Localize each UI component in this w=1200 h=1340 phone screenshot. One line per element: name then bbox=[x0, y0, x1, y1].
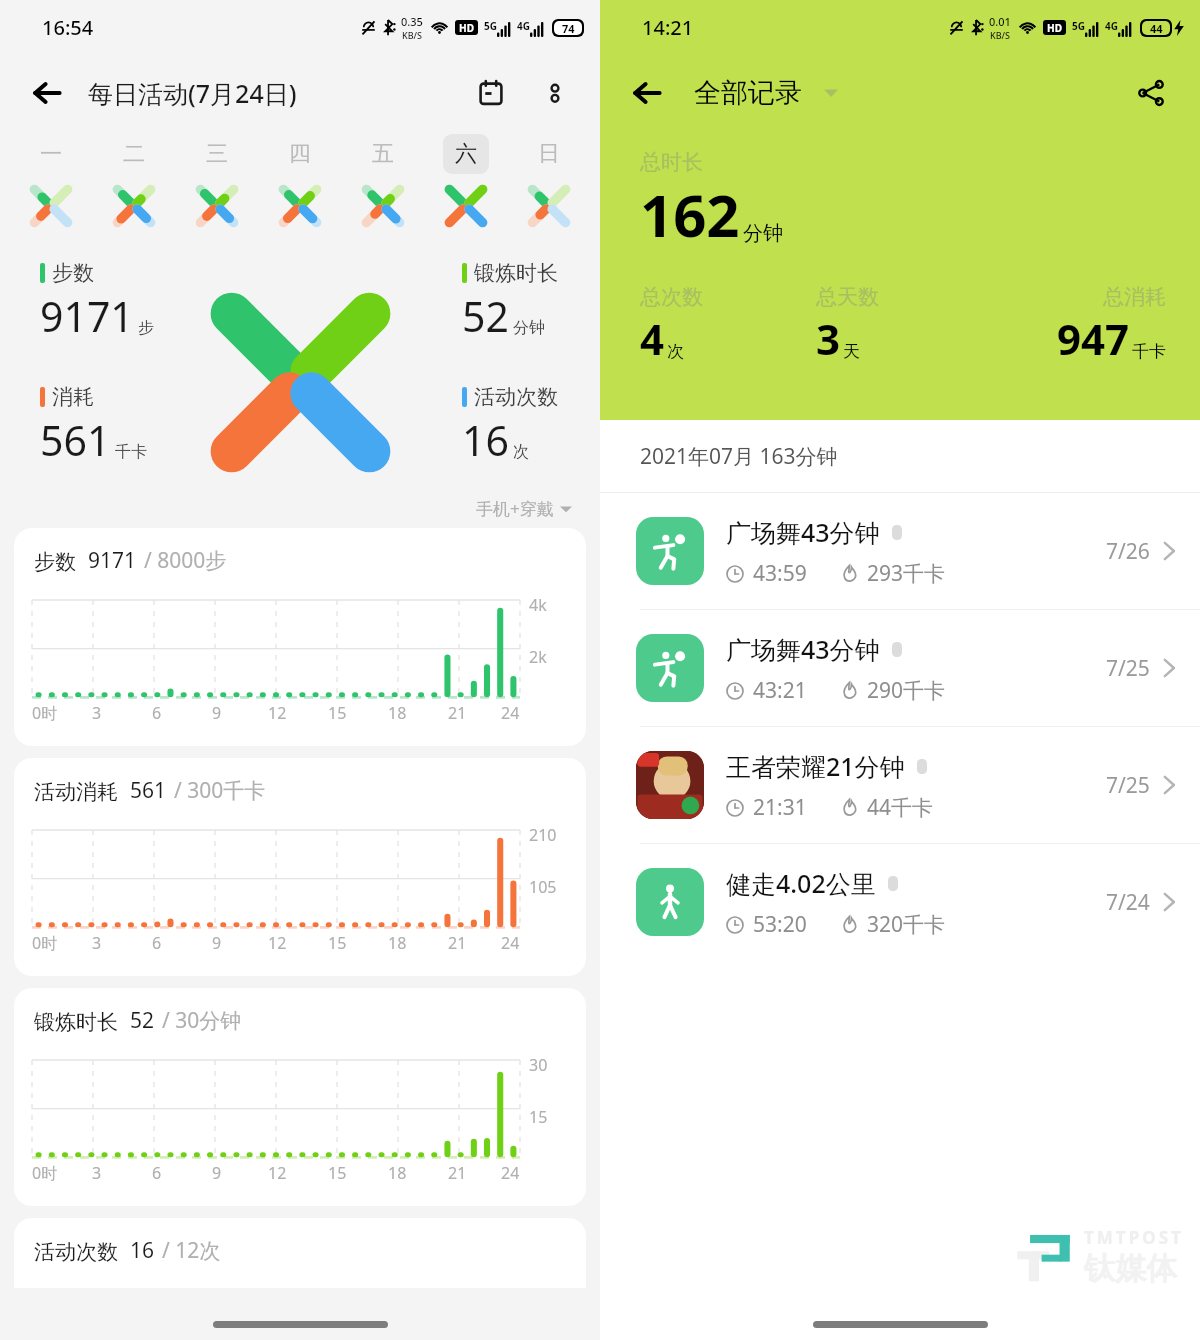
button[interactable]: 锻炼时长 bbox=[462, 260, 558, 344]
button[interactable]: 四 bbox=[258, 130, 341, 178]
staticText: 9171 bbox=[40, 288, 134, 344]
staticText: 4 bbox=[640, 310, 665, 367]
staticText: 43:21 bbox=[753, 676, 807, 705]
staticText: 74 bbox=[562, 21, 575, 35]
button[interactable]: 全部记录 bbox=[694, 76, 838, 110]
staticText: 7/25 bbox=[1106, 654, 1150, 683]
button[interactable]: Share bbox=[1128, 70, 1174, 116]
staticText: 18 bbox=[388, 702, 407, 724]
staticText: 三 bbox=[206, 140, 228, 168]
staticText: / 12次 bbox=[162, 1236, 221, 1265]
staticText: KB/S bbox=[402, 29, 422, 41]
staticText: 293千卡 bbox=[867, 559, 946, 588]
button[interactable]: 锻炼时长 bbox=[14, 988, 586, 1206]
button[interactable]: 活动次数 bbox=[462, 384, 558, 468]
staticText: 3 bbox=[92, 702, 102, 724]
staticText: 2021年07月 163分钟 bbox=[640, 442, 838, 471]
staticText: 9 bbox=[212, 702, 222, 724]
staticText: 锻炼时长 bbox=[474, 260, 558, 286]
button[interactable]: 日 bbox=[507, 130, 590, 178]
staticText: 16 bbox=[130, 1236, 155, 1265]
staticText: 3 bbox=[92, 932, 102, 954]
staticText: 五 bbox=[372, 140, 394, 168]
button[interactable] bbox=[175, 178, 258, 234]
staticText: 24 bbox=[501, 1162, 520, 1184]
staticText: 44 bbox=[1150, 21, 1163, 35]
staticText: 15 bbox=[529, 1106, 548, 1128]
staticText: HD bbox=[459, 21, 474, 35]
button[interactable]: 活动消耗 bbox=[14, 758, 586, 976]
staticText: 一 bbox=[40, 140, 62, 168]
staticText: KB/S bbox=[990, 29, 1010, 41]
button[interactable] bbox=[507, 178, 590, 234]
staticText: / 30分钟 bbox=[162, 1006, 242, 1035]
staticText: 六 bbox=[455, 140, 477, 168]
staticText: 广场舞43分钟 bbox=[726, 515, 880, 549]
staticText: TMTPOST bbox=[1084, 1226, 1184, 1249]
staticText: 广场舞43分钟 bbox=[726, 632, 880, 666]
button[interactable]: 五 bbox=[341, 130, 424, 178]
staticText: 消耗 bbox=[52, 384, 94, 410]
staticText: 43:59 bbox=[753, 559, 807, 588]
staticText: 分钟 bbox=[513, 318, 545, 338]
staticText: 18 bbox=[388, 1162, 407, 1184]
button[interactable] bbox=[341, 178, 424, 234]
staticText: 21:31 bbox=[753, 793, 807, 822]
button[interactable]: 广场舞43分钟 bbox=[600, 493, 1200, 609]
staticText: 四 bbox=[289, 140, 311, 168]
staticText: 总消耗 bbox=[1103, 284, 1166, 310]
staticText: 步数 bbox=[52, 260, 94, 286]
button[interactable]: 六 bbox=[424, 130, 507, 178]
button[interactable]: 广场舞43分钟 bbox=[600, 610, 1200, 726]
button[interactable]: 步数 bbox=[40, 260, 154, 344]
staticText: 162 bbox=[640, 175, 740, 254]
button[interactable]: 三 bbox=[175, 130, 258, 178]
button[interactable]: More options bbox=[532, 70, 578, 116]
staticText: 锻炼时长 bbox=[34, 1009, 118, 1035]
button[interactable]: 二 bbox=[92, 130, 175, 178]
button[interactable]: 活动次数 bbox=[14, 1218, 586, 1288]
staticText: 52 bbox=[462, 288, 509, 344]
staticText: 21 bbox=[448, 702, 467, 724]
button[interactable]: 手机+穿戴 bbox=[476, 497, 572, 520]
button[interactable]: Back bbox=[624, 70, 670, 116]
staticText: 7/24 bbox=[1106, 888, 1150, 917]
staticText: 总次数 bbox=[640, 284, 703, 310]
staticText: 分钟 bbox=[743, 221, 783, 246]
button[interactable]: Records bbox=[468, 70, 514, 116]
button[interactable] bbox=[92, 178, 175, 234]
staticText: 947 bbox=[1057, 310, 1130, 367]
staticText: 0.01 bbox=[989, 14, 1011, 29]
staticText: 0时 bbox=[32, 702, 58, 724]
button[interactable]: 一 bbox=[10, 130, 92, 178]
staticText: 总时长 bbox=[640, 149, 703, 175]
staticText: 4G bbox=[1105, 19, 1118, 33]
staticText: 0时 bbox=[32, 932, 58, 954]
staticText: 手机+穿戴 bbox=[476, 497, 554, 520]
staticText: 21 bbox=[448, 932, 467, 954]
staticText: 活动次数 bbox=[474, 384, 558, 410]
staticText: 步数 bbox=[34, 549, 76, 575]
button[interactable]: 健走4.02公里 bbox=[600, 844, 1200, 960]
staticText: 16 bbox=[462, 412, 509, 468]
staticText: 二 bbox=[123, 140, 145, 168]
staticText: 0时 bbox=[32, 1162, 58, 1184]
staticText: 105 bbox=[529, 876, 557, 898]
button[interactable]: 步数 bbox=[14, 528, 586, 746]
staticText: 15 bbox=[328, 1162, 347, 1184]
staticText: 7/26 bbox=[1106, 537, 1150, 566]
staticText: HD bbox=[1047, 21, 1062, 35]
staticText: 活动消耗 bbox=[34, 779, 118, 805]
staticText: 全部记录 bbox=[694, 76, 802, 110]
button[interactable]: Back bbox=[24, 70, 70, 116]
staticText: 2k bbox=[529, 646, 547, 668]
button[interactable]: 王者荣耀21分钟 bbox=[600, 727, 1200, 843]
staticText: 5G bbox=[1072, 19, 1085, 33]
staticText: 14:21 bbox=[642, 14, 694, 41]
button[interactable]: 消耗 bbox=[40, 384, 147, 468]
button[interactable] bbox=[10, 178, 92, 234]
button[interactable] bbox=[258, 178, 341, 234]
staticText: 4G bbox=[517, 19, 530, 33]
staticText: 561 bbox=[40, 412, 111, 468]
button[interactable] bbox=[424, 178, 507, 234]
